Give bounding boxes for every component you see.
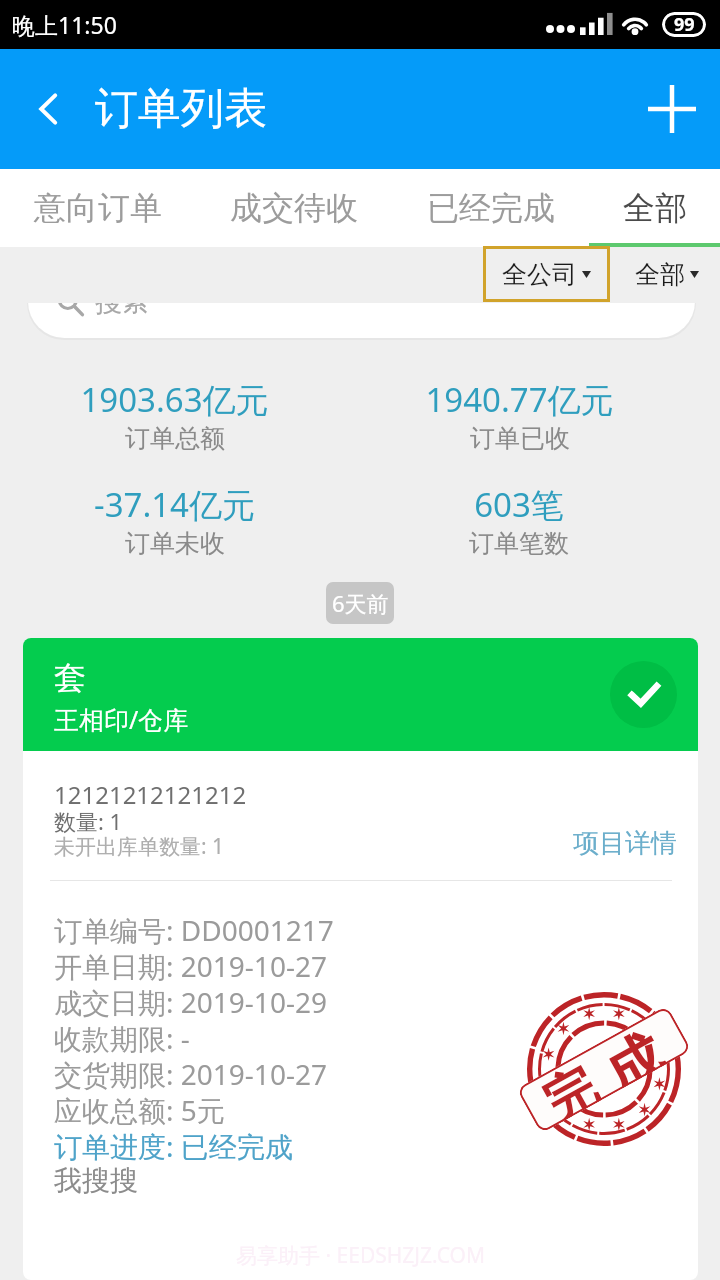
staticText: 完: [533, 1055, 602, 1124]
staticText: 意向订单: [34, 188, 162, 228]
staticText: 易享助手 · EEDSHZJZ.COM: [236, 1241, 485, 1270]
staticText: 晚上11:50: [12, 9, 117, 40]
staticText: 数量: 1: [54, 806, 123, 836]
staticText: 应收总额: 5元: [54, 1091, 225, 1127]
button[interactable]: Back: [6, 67, 90, 151]
staticText: 订单编号: DD0001217: [54, 911, 334, 947]
staticText: 交货期限: 2019-10-27: [54, 1055, 327, 1091]
staticText: 开单日期: 2019-10-27: [54, 947, 327, 983]
staticText: 订单笔数: [469, 528, 569, 559]
button[interactable]: 603笔: [359, 482, 679, 559]
button[interactable]: 搜索: [28, 265, 695, 338]
staticText: 搜索: [95, 285, 149, 319]
staticText: 603笔: [474, 482, 564, 527]
button[interactable]: 套: [23, 638, 698, 1280]
staticText: 6天前: [332, 588, 389, 618]
button[interactable]: 全公司: [483, 246, 610, 302]
button[interactable]: 全部: [589, 169, 720, 247]
button[interactable]: Add order: [624, 61, 720, 157]
button[interactable]: 已经完成: [392, 169, 589, 247]
staticText: 全部: [635, 259, 685, 290]
staticText: 套: [54, 658, 86, 698]
staticText: 成交日期: 2019-10-29: [54, 983, 327, 1019]
staticText: 订单已收: [470, 423, 570, 454]
staticText: 12121212121212: [54, 778, 247, 811]
button[interactable]: 1903.63亿元: [14, 377, 334, 454]
staticText: 1940.77亿元: [425, 377, 614, 422]
staticText: 全部: [623, 188, 687, 228]
staticText: 我搜搜: [54, 1163, 138, 1198]
staticText: -37.14亿元: [94, 482, 255, 527]
button[interactable]: 全部: [614, 246, 720, 302]
staticText: 未开出库单数量: 1: [54, 832, 225, 861]
staticText: 成: [592, 1019, 667, 1092]
staticText: 1903.63亿元: [80, 377, 269, 422]
staticText: 收款期限: -: [54, 1019, 190, 1055]
staticText: 王相印/仓库: [54, 702, 189, 736]
staticText: 99: [674, 12, 695, 37]
staticText: 订单总额: [125, 423, 225, 454]
staticText: 全公司: [502, 259, 577, 290]
staticText: 已经完成: [427, 188, 555, 228]
button[interactable]: 成交待收: [196, 169, 392, 247]
button[interactable]: 意向订单: [0, 169, 196, 247]
staticText: 订单未收: [125, 528, 225, 559]
button[interactable]: 项目详情: [573, 827, 677, 860]
button[interactable]: 1940.77亿元: [359, 377, 679, 454]
staticText: 成交待收: [230, 188, 358, 228]
button[interactable]: -37.14亿元: [14, 482, 334, 559]
staticText: 订单列表: [95, 82, 267, 136]
staticText: 订单进度: 已经完成: [54, 1127, 293, 1163]
staticText: 项目详情: [573, 827, 677, 860]
